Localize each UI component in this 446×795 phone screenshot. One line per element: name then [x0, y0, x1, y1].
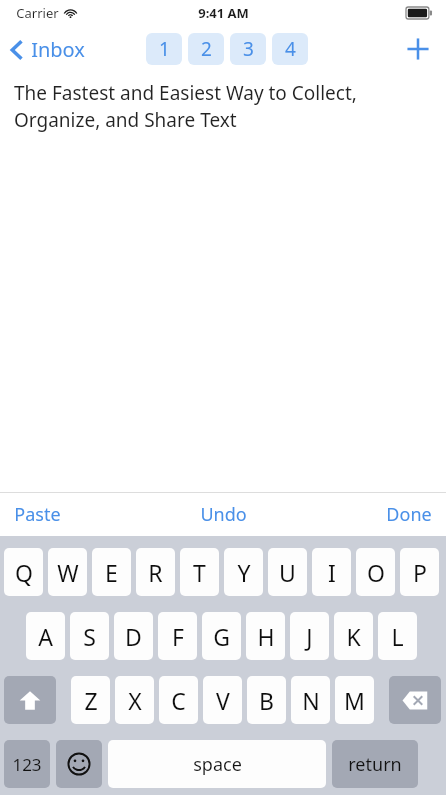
- button[interactable]: Done: [386, 502, 432, 527]
- staticText: M: [344, 685, 365, 716]
- staticText: O: [367, 557, 385, 588]
- staticText: Q: [15, 557, 33, 588]
- staticText: J: [306, 621, 313, 652]
- staticText: N: [302, 685, 320, 716]
- staticText: Z: [84, 685, 98, 716]
- staticText: V: [216, 685, 230, 716]
- button[interactable]: N: [291, 676, 330, 724]
- staticText: 1: [159, 36, 170, 62]
- staticText: 123: [12, 753, 42, 776]
- button[interactable]: Inbox: [10, 36, 85, 63]
- button[interactable]: Paste: [14, 502, 61, 527]
- staticText: Done: [386, 502, 432, 527]
- staticText: 3: [243, 36, 254, 62]
- button[interactable]: D: [114, 612, 153, 660]
- button[interactable]: Y: [224, 548, 263, 596]
- button[interactable]: Q: [4, 548, 43, 596]
- button[interactable]: L: [378, 612, 417, 660]
- staticText: E: [105, 557, 118, 588]
- button[interactable]: E: [92, 548, 131, 596]
- staticText: P: [413, 557, 427, 588]
- button[interactable]: X: [115, 676, 154, 724]
- button[interactable]: Undo: [200, 502, 247, 527]
- staticText: G: [213, 621, 230, 652]
- button[interactable]: O: [356, 548, 395, 596]
- button[interactable]: Emoji: [56, 740, 102, 788]
- staticText: W: [57, 557, 79, 588]
- button[interactable]: V: [203, 676, 242, 724]
- button[interactable]: U: [268, 548, 307, 596]
- staticText: Paste: [14, 502, 61, 527]
- button[interactable]: Shift: [4, 676, 56, 724]
- staticText: X: [128, 685, 142, 716]
- staticText: H: [257, 621, 275, 652]
- staticText: B: [259, 685, 274, 716]
- button[interactable]: H: [246, 612, 285, 660]
- button[interactable]: R: [136, 548, 175, 596]
- staticText: F: [172, 621, 184, 652]
- button[interactable]: J: [290, 612, 329, 660]
- staticText: Y: [237, 557, 251, 588]
- button[interactable]: Add: [398, 29, 438, 69]
- button[interactable]: 123: [4, 740, 50, 788]
- staticText: T: [193, 557, 206, 588]
- staticText: L: [391, 621, 404, 652]
- button[interactable]: G: [202, 612, 241, 660]
- button[interactable]: P: [400, 548, 439, 596]
- button[interactable]: M: [335, 676, 374, 724]
- button[interactable]: 4: [272, 33, 308, 65]
- button[interactable]: C: [159, 676, 198, 724]
- staticText: R: [148, 557, 163, 588]
- staticText: A: [38, 621, 53, 652]
- staticText: D: [125, 621, 142, 652]
- button[interactable]: B: [247, 676, 286, 724]
- staticText: U: [279, 557, 296, 588]
- staticText: 2: [201, 36, 212, 62]
- button[interactable]: Z: [71, 676, 110, 724]
- staticText: Carrier: [16, 4, 59, 22]
- staticText: S: [83, 621, 96, 652]
- staticText: 4: [285, 36, 296, 62]
- button[interactable]: K: [334, 612, 373, 660]
- staticText: 9:41 AM: [198, 4, 249, 22]
- staticText: C: [171, 685, 186, 716]
- staticText: Inbox: [31, 36, 85, 63]
- staticText: space: [193, 752, 242, 777]
- button[interactable]: F: [158, 612, 197, 660]
- staticText: Undo: [200, 502, 247, 527]
- button[interactable]: 3: [230, 33, 266, 65]
- button[interactable]: 2: [188, 33, 224, 65]
- staticText: K: [346, 621, 361, 652]
- button[interactable]: space: [108, 740, 326, 788]
- button[interactable]: W: [48, 548, 87, 596]
- button[interactable]: T: [180, 548, 219, 596]
- button[interactable]: Backspace: [389, 676, 441, 724]
- staticText: The Fastest and Easiest Way to Collect, …: [14, 80, 357, 133]
- button[interactable]: 1: [146, 33, 182, 65]
- button[interactable]: return: [332, 740, 418, 788]
- staticText: return: [348, 752, 402, 777]
- button[interactable]: S: [70, 612, 109, 660]
- button[interactable]: I: [312, 548, 351, 596]
- staticText: I: [328, 557, 336, 588]
- button[interactable]: A: [26, 612, 65, 660]
